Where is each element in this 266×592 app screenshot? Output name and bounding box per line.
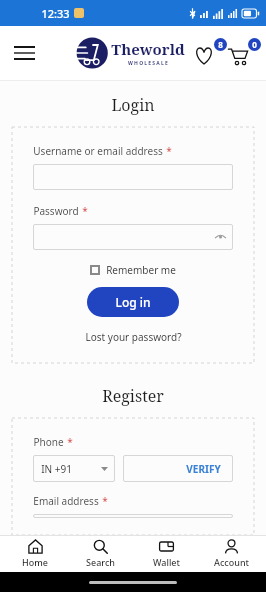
- staticText: Login: [111, 94, 155, 116]
- button[interactable]: Account: [200, 537, 262, 570]
- button[interactable]: VERIFY: [123, 455, 233, 482]
- staticText: 12:33: [41, 6, 70, 21]
- staticText: VERIFY: [186, 462, 221, 476]
- button[interactable]: [33, 514, 233, 518]
- button[interactable]: Wallet: [135, 537, 197, 570]
- button[interactable]: Remember me: [33, 263, 233, 277]
- staticText: 0: [252, 39, 257, 50]
- button[interactable]: Menu: [4, 33, 44, 73]
- staticText: Account: [214, 556, 249, 568]
- staticText: Theworld: [111, 39, 185, 59]
- button[interactable]: [33, 224, 233, 250]
- button[interactable]: Wishlist: [194, 38, 227, 68]
- staticText: Phone: [33, 435, 64, 449]
- staticText: *: [166, 144, 172, 158]
- button[interactable]: Search: [69, 537, 131, 570]
- staticText: Remember me: [106, 263, 176, 277]
- staticText: *: [102, 494, 108, 508]
- staticText: Search: [86, 556, 115, 568]
- button[interactable]: [33, 164, 233, 190]
- staticText: Lost your password?: [85, 330, 182, 344]
- staticText: Email address: [33, 494, 99, 508]
- button[interactable]: Log in: [87, 287, 179, 317]
- staticText: Log in: [115, 294, 151, 310]
- staticText: Wallet: [153, 556, 180, 568]
- staticText: 8: [218, 39, 223, 50]
- staticText: Register: [102, 385, 164, 407]
- staticText: *: [67, 435, 73, 449]
- staticText: Home: [22, 556, 48, 568]
- staticText: Username or email address: [33, 144, 163, 158]
- button[interactable]: Home: [4, 537, 66, 570]
- staticText: WHOLESALE: [128, 60, 169, 67]
- button[interactable]: Lost your password?: [83, 328, 184, 346]
- staticText: IN +91: [41, 462, 72, 476]
- button[interactable]: IN +91: [33, 455, 115, 482]
- button[interactable]: Cart: [228, 38, 261, 68]
- staticText: *: [82, 204, 88, 218]
- staticText: Password: [33, 204, 79, 218]
